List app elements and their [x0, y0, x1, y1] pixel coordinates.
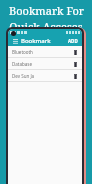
staticText: Bookmark For [9, 3, 84, 18]
staticText: Bluetooth [12, 49, 33, 55]
staticText: Bookmark [21, 37, 51, 45]
button[interactable]: Database [8, 58, 82, 69]
button[interactable]: Delete bookmark [72, 72, 78, 80]
button[interactable]: ADD [67, 37, 79, 45]
button[interactable]: Bluetooth [8, 46, 82, 57]
button[interactable]: Delete bookmark [72, 60, 78, 68]
staticText: ADD [68, 38, 78, 44]
button[interactable]: Dev Sun Ja [8, 70, 82, 81]
button[interactable]: Menu [11, 37, 19, 45]
button[interactable]: Delete bookmark [72, 48, 78, 56]
staticText: Dev Sun Ja [12, 73, 35, 79]
staticText: Database [12, 61, 32, 67]
staticText: Quick Acceses Letter [0, 19, 92, 49]
